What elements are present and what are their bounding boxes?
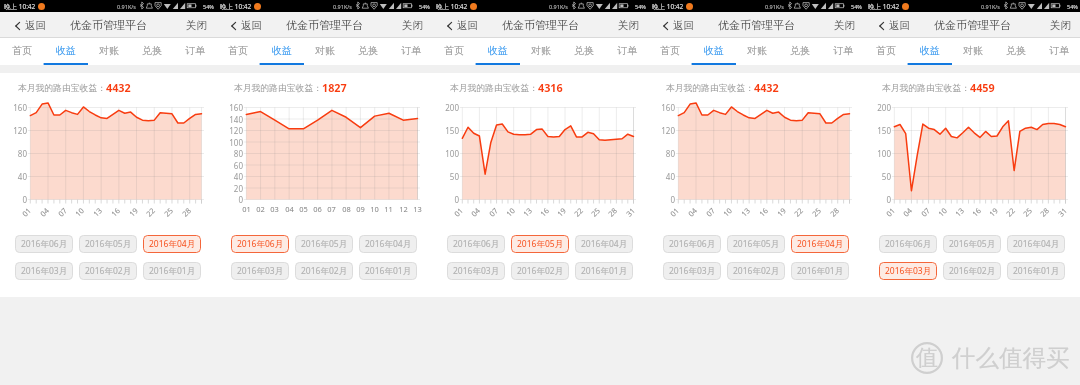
staticText: 28 <box>606 205 619 219</box>
button[interactable]: 2016年03月 <box>231 262 289 280</box>
button[interactable]: 2016年04月 <box>1007 235 1065 253</box>
staticText: 10 <box>73 205 86 219</box>
button[interactable]: 首页 <box>864 38 908 65</box>
button[interactable]: 首页 <box>432 38 476 65</box>
button[interactable]: 收益 <box>44 38 87 65</box>
button[interactable]: 2016年01月 <box>575 262 633 280</box>
button[interactable]: 2016年06月 <box>879 235 937 253</box>
button[interactable]: 2016年01月 <box>143 262 201 280</box>
staticText: 25 <box>1021 205 1034 219</box>
button[interactable]: 2016年01月 <box>1007 262 1065 280</box>
button[interactable]: 兑换 <box>994 38 1037 65</box>
button[interactable]: Back <box>648 14 700 37</box>
staticText: 4432 <box>754 80 779 95</box>
button[interactable]: 订单 <box>605 38 648 65</box>
button[interactable]: 2016年04月 <box>791 235 849 253</box>
button[interactable]: 2016年03月 <box>447 262 505 280</box>
button[interactable]: 对账 <box>87 38 130 65</box>
staticText: 100 <box>864 148 891 159</box>
staticText: 优金币管理平台 <box>718 18 795 32</box>
staticText: 07 <box>919 205 932 219</box>
staticText: 兑换 <box>790 44 810 57</box>
button[interactable]: 订单 <box>173 38 216 65</box>
staticText: 100 <box>216 137 243 148</box>
button[interactable]: 2016年01月 <box>359 262 417 280</box>
button[interactable]: 首页 <box>216 38 260 65</box>
button[interactable]: 2016年05月 <box>295 235 353 253</box>
button[interactable]: Back <box>864 14 916 37</box>
staticText: 收益 <box>488 44 508 57</box>
button[interactable]: 2016年05月 <box>79 235 137 253</box>
button[interactable]: 兑换 <box>346 38 389 65</box>
staticText: 4316 <box>538 80 563 95</box>
button[interactable]: Back <box>432 14 484 37</box>
staticText: 16 <box>757 205 770 219</box>
button[interactable]: 2016年06月 <box>15 235 73 253</box>
button[interactable]: 对账 <box>303 38 346 65</box>
button[interactable]: 2016年05月 <box>727 235 785 253</box>
staticText: 2016年06月 <box>21 238 68 250</box>
button[interactable]: 订单 <box>821 38 864 65</box>
button[interactable]: Back <box>0 14 52 37</box>
button[interactable]: 订单 <box>1037 38 1080 65</box>
button[interactable]: 收益 <box>692 38 735 65</box>
staticText: 19 <box>127 205 140 219</box>
button[interactable]: 2016年02月 <box>943 262 1001 280</box>
button[interactable]: 收益 <box>908 38 951 65</box>
button[interactable]: 收益 <box>260 38 303 65</box>
staticText: 兑换 <box>1006 44 1026 57</box>
button[interactable]: 2016年03月 <box>15 262 73 280</box>
staticText: 0.91K/s <box>981 3 1000 10</box>
button[interactable]: 2016年03月 <box>663 262 721 280</box>
button[interactable]: 关闭 <box>180 14 216 37</box>
staticText: 54% <box>203 3 214 10</box>
button[interactable]: 2016年04月 <box>143 235 201 253</box>
button[interactable]: 兑换 <box>778 38 821 65</box>
other: Back <box>13 21 23 31</box>
button[interactable]: 2016年05月 <box>943 235 1001 253</box>
staticText: 优金币管理平台 <box>934 18 1011 32</box>
button[interactable]: 2016年04月 <box>359 235 417 253</box>
staticText: 22 <box>572 205 585 219</box>
staticText: 31 <box>624 205 637 219</box>
button[interactable]: 兑换 <box>130 38 173 65</box>
other: Back <box>877 21 887 31</box>
staticText: 150 <box>432 125 459 136</box>
button[interactable]: 对账 <box>951 38 994 65</box>
button[interactable]: 关闭 <box>828 14 864 37</box>
button[interactable]: 关闭 <box>396 14 432 37</box>
button[interactable]: 关闭 <box>1044 14 1080 37</box>
button[interactable]: 关闭 <box>612 14 648 37</box>
button[interactable]: 兑换 <box>562 38 605 65</box>
button[interactable]: 2016年05月 <box>511 235 569 253</box>
staticText: 收益 <box>56 44 76 57</box>
staticText: 本月我的路由宝收益： <box>882 83 970 94</box>
button[interactable]: Back <box>216 14 268 37</box>
button[interactable]: 2016年02月 <box>727 262 785 280</box>
button[interactable]: 订单 <box>389 38 432 65</box>
button[interactable]: 2016年02月 <box>511 262 569 280</box>
button[interactable]: 2016年02月 <box>79 262 137 280</box>
staticText: 兑换 <box>358 44 378 57</box>
button[interactable]: 2016年03月 <box>879 262 937 280</box>
staticText: 返回 <box>457 19 478 32</box>
staticText: 2016年02月 <box>733 265 780 277</box>
staticText: 首页 <box>660 44 680 57</box>
button[interactable]: 2016年06月 <box>231 235 289 253</box>
staticText: 0.91K/s <box>549 3 568 10</box>
button[interactable]: 对账 <box>519 38 562 65</box>
staticText: 22 <box>144 205 157 219</box>
button[interactable]: 对账 <box>735 38 778 65</box>
button[interactable]: 2016年01月 <box>791 262 849 280</box>
button[interactable]: 首页 <box>0 38 44 65</box>
button[interactable]: 2016年06月 <box>447 235 505 253</box>
staticText: 07 <box>56 205 69 219</box>
button[interactable]: 2016年06月 <box>663 235 721 253</box>
button[interactable]: 2016年02月 <box>295 262 353 280</box>
staticText: 09 <box>353 204 368 214</box>
button[interactable]: 首页 <box>648 38 692 65</box>
staticText: 2016年01月 <box>797 265 844 277</box>
button[interactable]: 收益 <box>476 38 519 65</box>
staticText: 160 <box>216 102 243 113</box>
button[interactable]: 2016年04月 <box>575 235 633 253</box>
